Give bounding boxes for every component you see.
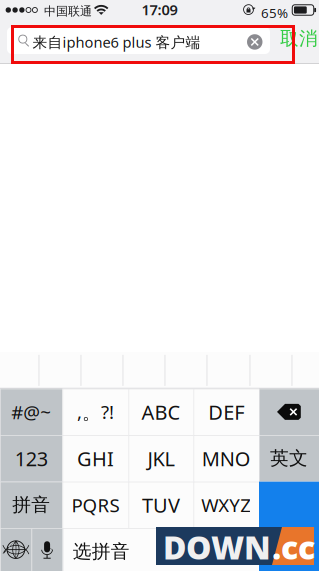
staticText: 拼音 [12,493,50,516]
button[interactable]: 拼音 [0,482,62,528]
staticText: GHI [77,445,114,472]
button[interactable]: 搜索 [259,482,319,571]
button[interactable]: 来自iphone6 plus 客户端 [7,27,270,54]
staticText: .cc [272,526,315,568]
button[interactable]: ,。?! [62,389,128,435]
button[interactable]: Next keyboard [0,528,31,571]
staticText: 65% [261,4,288,22]
staticText: TUV [142,492,180,518]
staticText: 中国联通 [44,4,92,19]
button[interactable]: 取消 [279,25,319,52]
staticText: 搜索 [270,536,308,559]
button[interactable]: JKL [128,435,193,482]
staticText: ABC [141,399,180,425]
button[interactable]: MNO [193,435,259,482]
staticText: WXYZ [201,492,251,517]
button[interactable]: 英文 [259,435,319,482]
button[interactable]: DEF [193,389,259,435]
staticText: DOWN [163,526,271,568]
button[interactable]: 123 [0,435,62,482]
staticText: 英文 [270,447,308,470]
staticText: 选拼音 [73,540,130,563]
button[interactable]: PQRS [62,482,128,528]
button[interactable]: ABC [128,389,193,435]
staticText: DEF [208,399,244,425]
staticText: ,。?! [77,399,114,424]
staticText: 17:09 [141,0,177,19]
staticText: 来自iphone6 plus 客户端 [32,32,200,52]
button[interactable]: TUV [128,482,193,528]
button[interactable]: 选拼音 [63,528,259,571]
staticText: #@~ [11,399,51,424]
button[interactable]: Dictation [31,528,63,571]
button[interactable]: #@~ [0,389,62,435]
staticText: JKL [147,445,174,472]
button[interactable]: Delete [259,389,319,435]
staticText: MNO [202,445,251,472]
staticText: 取消 [280,27,318,50]
button[interactable]: WXYZ [193,482,259,528]
button[interactable]: GHI [62,435,128,482]
staticText: PQRS [71,492,119,517]
staticText: 123 [15,445,48,472]
